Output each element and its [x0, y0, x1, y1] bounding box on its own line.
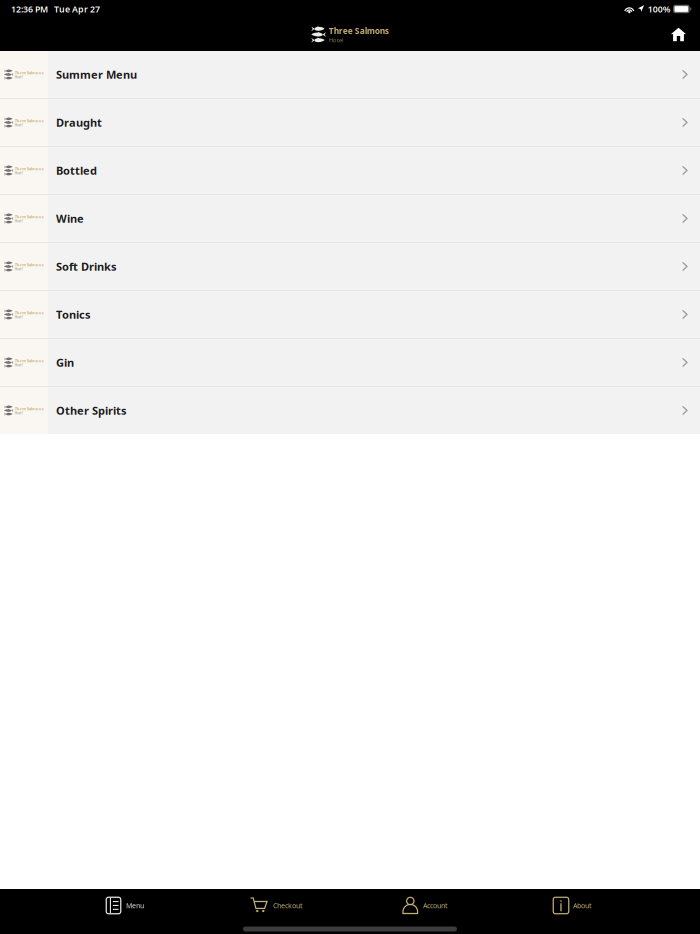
staticText: Three Salmons [15, 358, 44, 363]
staticText: Draught [56, 115, 102, 130]
button[interactable]: Menu [106, 892, 250, 918]
staticText: Menu [126, 901, 144, 910]
staticText: 100% [648, 3, 671, 15]
staticText: Account [423, 901, 448, 910]
button[interactable]: Three Salmons [0, 243, 700, 290]
staticText: Checkout [273, 901, 303, 910]
button[interactable]: Three Salmons [0, 195, 700, 242]
staticText: Three Salmons [329, 25, 389, 36]
staticText: Wine [56, 211, 84, 226]
staticText: Hotel [329, 36, 344, 44]
button[interactable]: Three Salmons [0, 387, 700, 434]
button[interactable]: Three Salmons [0, 147, 700, 194]
staticText: Three Salmons [15, 118, 44, 123]
staticText: i [559, 896, 563, 915]
staticText: Hotel [15, 75, 23, 79]
staticText: Soft Drinks [56, 259, 117, 274]
staticText: About [573, 901, 592, 910]
staticText: Hotel [15, 123, 23, 127]
button[interactable]: Three Salmons [0, 339, 700, 386]
staticText: Hotel [15, 267, 23, 271]
button[interactable]: Checkout [250, 892, 402, 918]
button[interactable]: i [553, 892, 653, 918]
button[interactable]: Three Salmons [0, 291, 700, 338]
button[interactable]: Three Salmons [0, 99, 700, 146]
staticText: Bottled [56, 163, 97, 178]
staticText: Gin [56, 355, 74, 370]
staticText: 12:36 PM Tue Apr 27 [11, 3, 100, 15]
button[interactable]: Home [660, 22, 700, 47]
staticText: Three Salmons [15, 406, 44, 411]
staticText: Three Salmons [15, 70, 44, 75]
staticText: Hotel [15, 219, 23, 223]
staticText: Hotel [15, 411, 23, 415]
staticText: Tonics [56, 307, 91, 322]
staticText: Three Salmons [15, 262, 44, 267]
staticText: Summer Menu [56, 67, 137, 82]
staticText: Three Salmons [15, 310, 44, 315]
staticText: Hotel [15, 171, 23, 175]
staticText: Other Spirits [56, 403, 127, 418]
staticText: Three Salmons [15, 214, 44, 219]
staticText: Hotel [15, 315, 23, 319]
button[interactable]: Three Salmons [0, 51, 700, 98]
staticText: Three Salmons [15, 166, 44, 171]
button[interactable]: Account [402, 892, 553, 918]
staticText: Hotel [15, 363, 23, 367]
